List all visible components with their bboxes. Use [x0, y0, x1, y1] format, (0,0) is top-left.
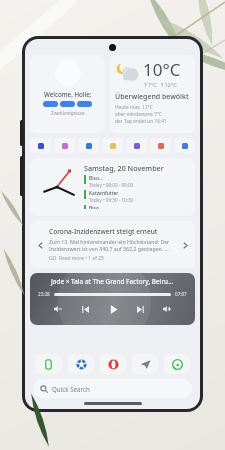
- staticText: 23:28: [38, 291, 50, 297]
- button[interactable]: App shortcut: [174, 138, 195, 153]
- button[interactable]: Samstag, 20 November: [30, 158, 195, 216]
- button[interactable]: Play: [106, 302, 120, 316]
- button[interactable]: Opera: [100, 354, 126, 374]
- staticText: Samstag, 20 November: [84, 163, 164, 173]
- button[interactable]: App shortcut: [150, 138, 171, 153]
- staticText: Today • 09:30 - 10:30: [89, 197, 134, 203]
- button[interactable]: Next story: [178, 238, 192, 252]
- staticText: ↑7°C ↑12°C: [143, 81, 177, 89]
- staticText: Inzidenzwert ist von 340,7 auf 362,2 ges…: [49, 245, 169, 252]
- button[interactable]: 10°C: [110, 55, 195, 133]
- staticText: Today • 08:00 - 09:00: [89, 182, 134, 188]
- button[interactable]: Telegram: [132, 354, 158, 374]
- staticText: Welcome, Holle:: [44, 90, 92, 98]
- button[interactable]: App shortcut: [54, 138, 75, 153]
- staticText: GO Read more • 1 of 25: [49, 255, 104, 262]
- button[interactable]: Previous story: [30, 221, 195, 268]
- button[interactable]: Volume up: [160, 302, 174, 316]
- button[interactable]: WhatsApp: [164, 354, 190, 374]
- button[interactable]: App shortcut: [102, 138, 123, 153]
- staticText: 07:07: [175, 291, 187, 297]
- staticText: Überwiegend bewölkt: [115, 92, 189, 102]
- button[interactable]: App shortcut: [78, 138, 99, 153]
- button[interactable]: Previous track: [78, 302, 92, 316]
- button[interactable]: Welcome, Holle:: [30, 55, 105, 133]
- staticText: der Tag endet un 16:41: [115, 118, 167, 125]
- button[interactable]: Previous story: [33, 238, 47, 252]
- button[interactable]: Next track: [133, 302, 147, 316]
- button[interactable]: Quick Search: [33, 379, 192, 398]
- button[interactable]: Jade × Tala at The Grand Factory, Beiru.…: [30, 273, 195, 325]
- staticText: Heute max. 12°C: [115, 104, 153, 111]
- staticText: Corona-Inzidenzwert steigt erneut deutli…: [49, 227, 176, 236]
- staticText: Quick Search: [52, 385, 90, 393]
- staticText: Zum 13. Mal hintereinander ein Höchststa…: [49, 238, 170, 245]
- staticText: aber mindestens 7°C: [115, 111, 162, 118]
- button[interactable]: Phone: [35, 354, 62, 374]
- staticText: Biso...: [89, 205, 103, 209]
- button[interactable]: Browser: [68, 354, 94, 374]
- button[interactable]: Volume down: [51, 302, 65, 316]
- staticText: Katzenfutter: [89, 190, 119, 197]
- staticText: Biso...: [89, 175, 103, 182]
- staticText: Jade × Tala at The Grand Factory, Beiru.…: [51, 277, 174, 286]
- staticText: Zweitkreignisse: [51, 110, 85, 116]
- button[interactable]: App shortcut: [30, 138, 51, 153]
- staticText: 10°C: [143, 58, 181, 81]
- button[interactable]: App shortcut: [126, 138, 147, 153]
